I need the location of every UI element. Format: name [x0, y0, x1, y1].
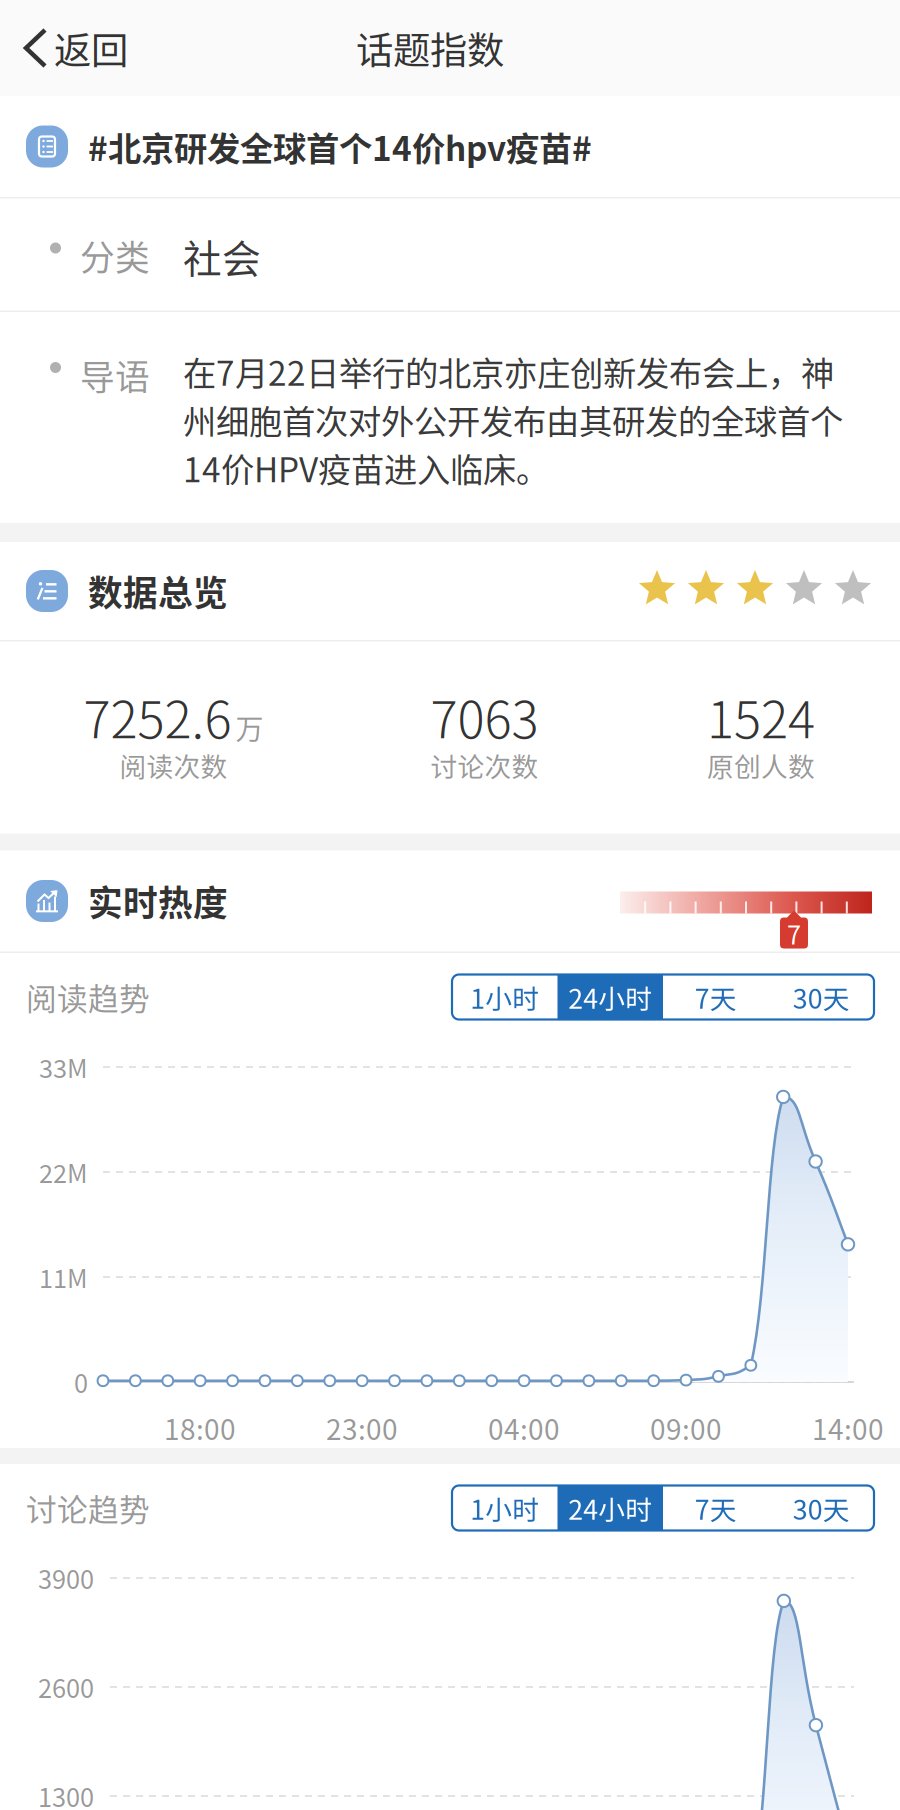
staticText: 1524 — [707, 679, 815, 753]
staticText: 23:00 — [326, 1407, 398, 1448]
button[interactable]: 30天 — [768, 1485, 874, 1530]
staticText: 24小时 — [568, 978, 652, 1016]
staticText: 3900 — [38, 1560, 94, 1596]
staticText: 04:00 — [488, 1407, 560, 1448]
staticText: 阅读次数 — [119, 746, 227, 784]
staticText: 30天 — [793, 978, 850, 1016]
staticText: 14:00 — [812, 1407, 884, 1448]
staticText: 1300 — [38, 1778, 94, 1810]
staticText: 实时热度 — [88, 876, 228, 926]
button[interactable]: 1小时 — [452, 1485, 557, 1530]
staticText: 11M — [39, 1259, 88, 1295]
staticText: 导语 — [80, 350, 150, 400]
staticText: 18:00 — [164, 1407, 236, 1448]
staticText: 22M — [39, 1154, 88, 1190]
staticText: 1小时 — [470, 978, 539, 1016]
button[interactable]: 返回 — [0, 0, 146, 96]
staticText: 7 — [787, 915, 801, 952]
staticText: 社会 — [183, 228, 261, 284]
staticText: 09:00 — [650, 1407, 722, 1448]
staticText: #北京研发全球首个14价hpv疫苗# — [88, 122, 592, 171]
staticText: 7063 — [430, 679, 538, 753]
staticText: 7天 — [695, 1489, 737, 1527]
staticText: 话题指数 — [356, 21, 504, 75]
staticText: 在7月22日举行的北京亦庄创新发布会上，神州细胞首次对外公开发布由其研发的全球首… — [183, 347, 843, 492]
button[interactable]: 30天 — [768, 974, 874, 1019]
button[interactable]: 7天 — [663, 1485, 768, 1530]
staticText: 讨论趋势 — [26, 1486, 150, 1530]
staticText: 2600 — [38, 1669, 94, 1705]
staticText: 0 — [74, 1364, 88, 1400]
staticText: 33M — [39, 1049, 88, 1085]
button[interactable]: 24小时 — [557, 974, 663, 1019]
staticText: 24小时 — [568, 1489, 652, 1527]
button[interactable]: #北京研发全球首个14价hpv疫苗# — [0, 96, 900, 197]
staticText: 7天 — [695, 978, 737, 1016]
staticText: 讨论次数 — [430, 746, 538, 784]
staticText: 万 — [235, 707, 263, 748]
staticText: 7252.6 — [83, 679, 231, 753]
staticText: 返回 — [54, 21, 128, 75]
staticText: 30天 — [793, 1489, 850, 1527]
button[interactable]: 24小时 — [557, 1485, 663, 1530]
staticText: 分类 — [80, 230, 150, 281]
staticText: 数据总览 — [88, 566, 228, 616]
button[interactable]: 1小时 — [452, 974, 557, 1019]
button[interactable]: 7天 — [663, 974, 768, 1019]
staticText: 原创人数 — [707, 746, 815, 784]
staticText: 阅读趋势 — [26, 975, 150, 1019]
staticText: 1小时 — [470, 1489, 539, 1527]
